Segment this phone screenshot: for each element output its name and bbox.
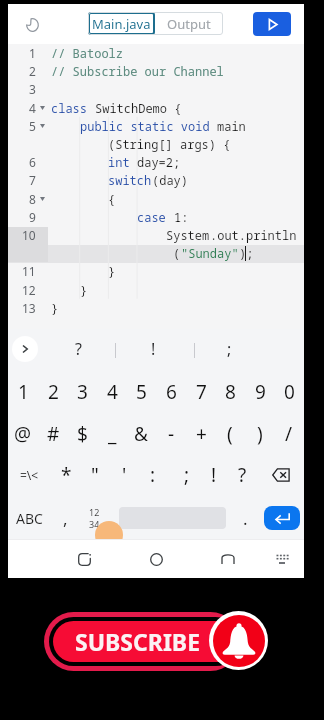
button[interactable]: _ [97, 416, 127, 452]
button[interactable]: # [38, 416, 68, 452]
button[interactable]: : [139, 458, 167, 492]
button[interactable]: ( [215, 416, 245, 452]
staticText: ? [238, 462, 247, 488]
button[interactable]: 3 [67, 374, 97, 410]
button[interactable]: ABC [5, 499, 53, 537]
button[interactable]: , [50, 499, 80, 537]
staticText: =\< [20, 467, 39, 483]
button[interactable]: ? [62, 335, 94, 363]
button[interactable]: ; [173, 458, 201, 492]
button[interactable]: 5 [126, 374, 156, 410]
staticText: case [137, 209, 174, 225]
button[interactable]: Backspace [261, 458, 301, 492]
button[interactable]: Notification bell [213, 615, 265, 667]
staticText: / [285, 421, 293, 447]
staticText: 4 [29, 100, 36, 116]
staticText: 8 [29, 191, 36, 207]
staticText: & [134, 421, 148, 447]
staticText: 9 [255, 379, 266, 405]
button[interactable]: Output [155, 12, 223, 35]
staticText: @ [14, 421, 32, 447]
button[interactable]: @ [8, 416, 38, 452]
staticText: SwitchDemo { [95, 100, 182, 116]
button[interactable]: Dark mode [19, 12, 45, 38]
button[interactable]: 8 [215, 374, 245, 410]
staticText: ? [75, 338, 82, 360]
staticText: 0 [284, 379, 295, 405]
staticText: } [80, 282, 88, 298]
button[interactable]: More suggestions [12, 336, 38, 362]
button[interactable]: Numbers [79, 499, 109, 537]
staticText: . [243, 507, 248, 530]
staticText: Main.java [92, 15, 151, 33]
staticText: 13 [22, 300, 36, 316]
staticText: } [108, 263, 116, 279]
button[interactable]: 4 [97, 374, 127, 410]
staticText: ; [184, 462, 190, 488]
button[interactable]: ? [228, 458, 256, 492]
staticText: main [217, 118, 246, 134]
staticText: , [63, 507, 68, 530]
button[interactable]: Back [70, 545, 98, 573]
staticText: 7 [29, 172, 36, 188]
button[interactable]: Back [70, 545, 98, 573]
button[interactable]: . [230, 499, 260, 537]
button[interactable]: 6 [156, 374, 186, 410]
staticText: 5 [29, 118, 36, 134]
staticText: ); [239, 245, 254, 261]
button[interactable]: + [186, 416, 216, 452]
staticText: ; [227, 338, 232, 360]
button[interactable]: / [274, 416, 304, 452]
staticText: 10 [22, 227, 36, 243]
staticText: 8 [225, 379, 236, 405]
button[interactable]: Run [253, 12, 291, 36]
staticText: // Batoolz [51, 45, 124, 61]
button[interactable]: ) [245, 416, 275, 452]
button[interactable]: & [126, 416, 156, 452]
button[interactable]: 9 [245, 374, 275, 410]
staticText: * [61, 462, 72, 488]
button[interactable]: ! [137, 335, 169, 363]
button[interactable]: " [81, 458, 109, 492]
button[interactable]: ; [213, 335, 245, 363]
button[interactable]: Enter [264, 506, 300, 530]
button[interactable]: 1 [8, 374, 38, 410]
button[interactable]: Space [119, 507, 226, 529]
button[interactable]: 7 [186, 374, 216, 410]
staticText: ! [151, 338, 156, 360]
staticText: 4 [107, 379, 118, 405]
button[interactable]: Switch keyboard [268, 545, 296, 573]
button[interactable]: 0 [274, 374, 304, 410]
staticText: ! [211, 462, 217, 488]
button[interactable]: ' [110, 458, 138, 492]
staticText: ( [173, 245, 181, 261]
button[interactable]: =\< [7, 458, 51, 492]
staticText: int [108, 154, 137, 170]
button[interactable]: * [52, 458, 80, 492]
staticText: 6 [29, 154, 36, 170]
staticText: 3 [77, 379, 88, 405]
staticText: "Sunday" [181, 245, 239, 261]
button[interactable]: $ [67, 416, 97, 452]
button[interactable]: Home [142, 545, 170, 573]
button[interactable]: ! [200, 458, 228, 492]
button[interactable]: SUBSCRIBE [53, 621, 241, 662]
button[interactable]: Recent apps [214, 545, 242, 573]
button[interactable]: Recent apps [214, 545, 242, 573]
staticText: switch [108, 172, 152, 188]
staticText: System [166, 227, 210, 243]
staticText: ) [257, 421, 263, 447]
button[interactable]: Main.java [88, 12, 155, 35]
staticText: - [168, 421, 175, 447]
button[interactable]: Home [142, 545, 170, 573]
staticText: 3 [29, 81, 36, 97]
staticText: class [51, 100, 95, 116]
button[interactable]: - [156, 416, 186, 452]
button[interactable]: Switch keyboard [268, 545, 296, 573]
staticText: } [51, 300, 59, 316]
staticText: SUBSCRIBE [75, 626, 201, 657]
button[interactable]: 2 [38, 374, 68, 410]
staticText: : [150, 462, 156, 488]
staticText: 12 [22, 282, 36, 298]
staticText: 1 [29, 45, 36, 61]
